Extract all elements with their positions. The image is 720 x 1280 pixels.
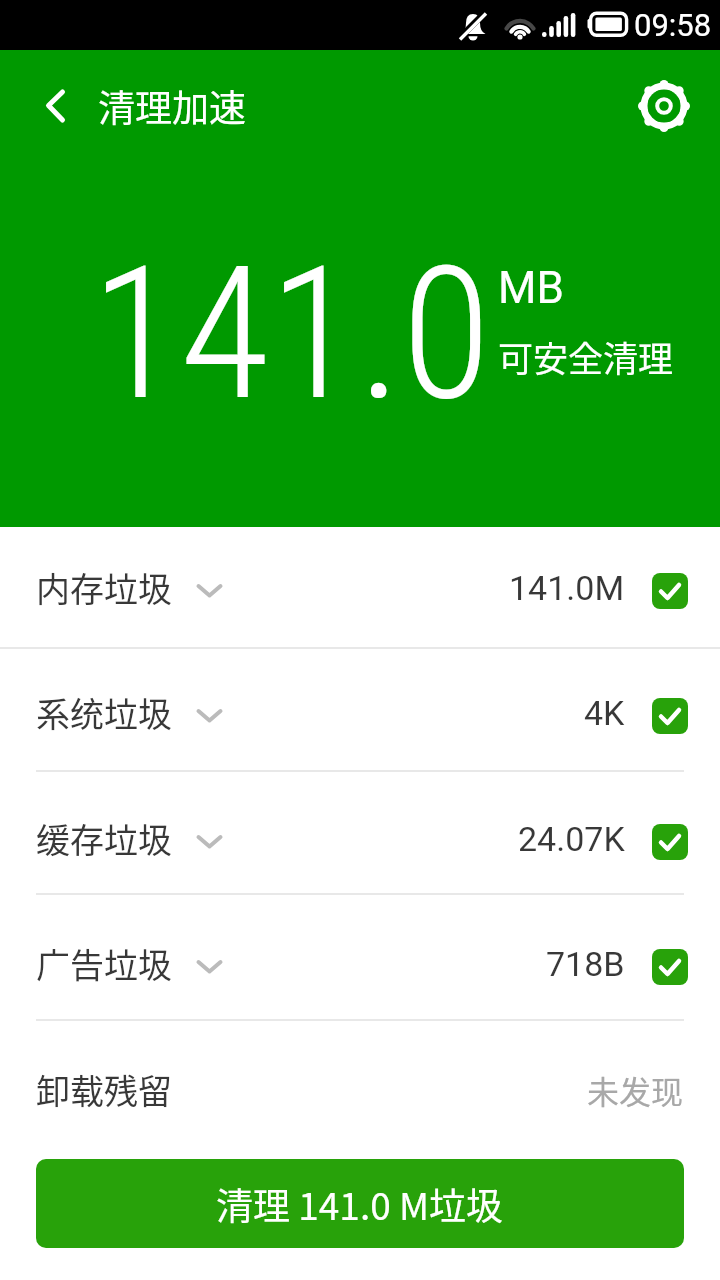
button[interactable]: 缓存垃圾 — [0, 772, 720, 893]
button[interactable]: 广告垃圾 — [0, 895, 720, 1019]
button[interactable] — [0, 50, 90, 162]
staticText: 系统垃圾 — [36, 688, 172, 737]
button[interactable] — [626, 50, 702, 162]
staticText: 24.07K — [518, 819, 625, 859]
staticText: 4K — [584, 693, 625, 733]
button[interactable] — [652, 573, 688, 609]
button[interactable]: 内存垃圾 — [0, 527, 720, 647]
staticText: 缓存垃圾 — [36, 814, 172, 863]
staticText: 清理加速 — [98, 79, 246, 133]
staticText: 卸载残留 — [36, 1065, 172, 1114]
button[interactable] — [652, 824, 688, 860]
staticText: 可安全清理 — [498, 331, 674, 382]
staticText: MB — [498, 262, 564, 314]
button[interactable]: 卸载残留 — [0, 1021, 720, 1151]
button[interactable]: 系统垃圾 — [0, 649, 720, 770]
button[interactable] — [652, 949, 688, 985]
staticText: 718B — [546, 944, 625, 984]
staticText: 141.0M — [509, 568, 625, 608]
staticText: 内存垃圾 — [36, 563, 172, 612]
staticText: 09:58 — [634, 7, 712, 43]
button[interactable]: 清理 141.0 M垃圾 — [36, 1159, 684, 1248]
button[interactable] — [652, 698, 688, 734]
staticText: 广告垃圾 — [36, 939, 172, 988]
staticText: 未发现 — [587, 1067, 684, 1113]
staticText: 清理 141.0 M垃圾 — [216, 1177, 504, 1231]
staticText: 141.0 — [91, 227, 491, 441]
